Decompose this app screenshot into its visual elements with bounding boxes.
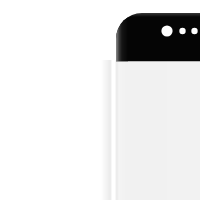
button[interactable]: Device product render xyxy=(0,0,200,200)
